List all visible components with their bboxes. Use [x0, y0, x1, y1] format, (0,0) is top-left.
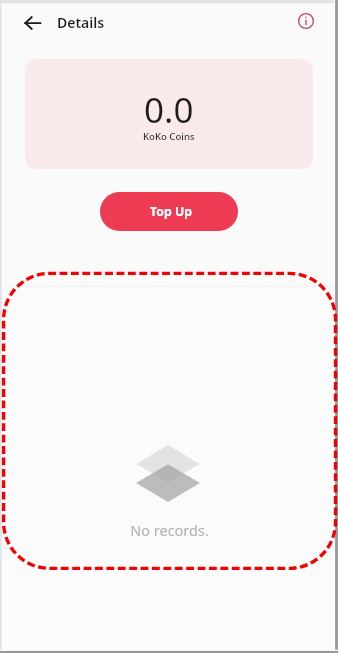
- staticText: Details: [57, 13, 105, 32]
- staticText: No records.: [130, 520, 209, 540]
- button[interactable]: Information: [288, 3, 323, 38]
- staticText: 0.0: [144, 86, 194, 134]
- button[interactable]: 0.0: [25, 59, 313, 169]
- staticText: KoKo Coins: [143, 130, 195, 143]
- staticText: Top Up: [150, 203, 192, 220]
- button[interactable]: Back: [14, 5, 50, 41]
- button[interactable]: Top Up: [100, 192, 238, 231]
